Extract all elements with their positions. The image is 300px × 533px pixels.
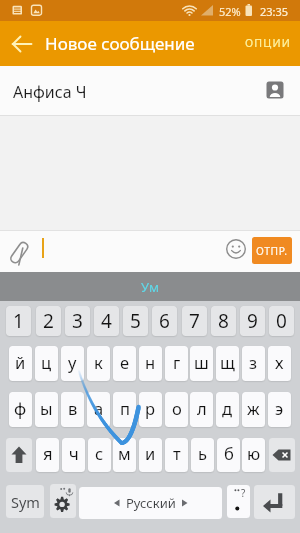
button[interactable]: б	[217, 438, 240, 472]
staticText: 9	[247, 308, 258, 334]
button[interactable]: Period	[227, 485, 250, 518]
staticText: х	[275, 351, 284, 373]
button[interactable]: Ум	[123, 273, 177, 301]
staticText: т	[173, 442, 181, 464]
button[interactable]: 2	[36, 306, 61, 336]
staticText: 23:35	[260, 4, 289, 19]
staticText: м	[118, 442, 131, 464]
staticText: ч	[69, 442, 79, 464]
button[interactable]: с	[88, 438, 111, 472]
button[interactable]: 1	[6, 306, 31, 336]
staticText: Анфиса Ч	[13, 81, 87, 103]
button[interactable]: р	[139, 392, 162, 427]
staticText: щ	[220, 351, 235, 373]
button[interactable]: 0	[269, 306, 294, 336]
button[interactable]: л	[190, 392, 213, 427]
staticText: г	[173, 351, 181, 373]
staticText: 0	[276, 308, 287, 334]
staticText: д	[222, 397, 233, 419]
button[interactable]: я	[36, 438, 59, 472]
button[interactable]: ц	[35, 346, 58, 381]
button[interactable]: а	[87, 392, 110, 427]
staticText: ?	[241, 486, 246, 500]
button[interactable]: у	[61, 346, 84, 381]
staticText: ОТПР.	[256, 244, 288, 258]
button[interactable]: ы	[35, 392, 58, 427]
staticText: р	[145, 397, 156, 419]
staticText: ОПЦИИ	[245, 36, 292, 51]
staticText: ю	[247, 442, 261, 464]
button[interactable]: 4	[94, 306, 119, 336]
staticText: ж	[247, 397, 260, 419]
staticText: Ум	[141, 278, 159, 296]
button[interactable]: Contacts	[262, 77, 288, 103]
staticText: о	[172, 397, 182, 419]
staticText: и	[145, 442, 156, 464]
staticText: ф	[14, 397, 27, 419]
staticText: с	[95, 442, 104, 464]
button[interactable]: м	[113, 438, 136, 472]
button[interactable]: о	[165, 392, 188, 427]
button[interactable]: в	[61, 392, 84, 427]
button[interactable]: Keyboard settings	[50, 484, 76, 518]
button[interactable]: Attach file	[4, 236, 32, 264]
staticText: 4	[101, 308, 112, 334]
staticText: 2	[43, 308, 54, 334]
staticText: Русский	[126, 494, 176, 512]
button[interactable]: ю	[242, 438, 265, 472]
button[interactable]: Back	[4, 26, 40, 62]
staticText: Новое сообщение	[45, 32, 195, 55]
button[interactable]: 5	[123, 306, 148, 336]
button[interactable]: 7	[182, 306, 207, 336]
staticText: ь	[198, 442, 207, 464]
staticText: Sym	[11, 492, 40, 512]
staticText: 7	[189, 308, 200, 334]
button[interactable]: д	[216, 392, 239, 427]
staticText: ш	[194, 351, 209, 373]
button[interactable]: ф	[9, 392, 32, 427]
button[interactable]: Emoji	[226, 239, 246, 259]
button[interactable]: Sym	[6, 485, 44, 518]
button[interactable]: е	[113, 346, 136, 381]
button[interactable]: ОТПР.	[252, 237, 292, 264]
button[interactable]: Backspace	[269, 438, 295, 472]
staticText: 5	[130, 308, 141, 334]
button[interactable]: н	[139, 346, 162, 381]
button[interactable]: 6	[152, 306, 177, 336]
staticText: ы	[40, 397, 53, 419]
button[interactable]: ь	[191, 438, 214, 472]
button[interactable]: з	[242, 346, 265, 381]
button[interactable]: э	[268, 392, 291, 427]
staticText: 8	[218, 308, 229, 334]
staticText: л	[197, 397, 207, 419]
button[interactable]: к	[87, 346, 110, 381]
button[interactable]: т	[165, 438, 188, 472]
button[interactable]: п	[113, 392, 136, 427]
button[interactable]: г	[165, 346, 188, 381]
button[interactable]: щ	[216, 346, 239, 381]
staticText: а	[94, 397, 104, 419]
staticText: п	[120, 397, 130, 419]
staticText: з	[249, 351, 258, 373]
button[interactable]: 9	[240, 306, 265, 336]
button[interactable]: 3	[65, 306, 90, 336]
staticText: 6	[159, 308, 170, 334]
staticText: э	[275, 397, 284, 419]
button[interactable]: Shift	[6, 438, 32, 472]
button[interactable]: ОПЦИИ	[237, 26, 300, 61]
button[interactable]: ш	[190, 346, 213, 381]
button[interactable]: х	[268, 346, 291, 381]
staticText: я	[43, 442, 53, 464]
button[interactable]: ч	[62, 438, 85, 472]
staticText: в	[68, 397, 78, 419]
button[interactable]: й	[9, 346, 32, 381]
button[interactable]: и	[139, 438, 162, 472]
staticText: 1	[13, 308, 24, 334]
button[interactable]: Enter	[254, 485, 295, 519]
button[interactable]: Русский	[79, 487, 222, 519]
button[interactable]: ж	[242, 392, 265, 427]
staticText: й	[15, 351, 26, 373]
staticText: к	[94, 351, 103, 373]
button[interactable]: 8	[211, 306, 236, 336]
staticText: н	[145, 351, 156, 373]
